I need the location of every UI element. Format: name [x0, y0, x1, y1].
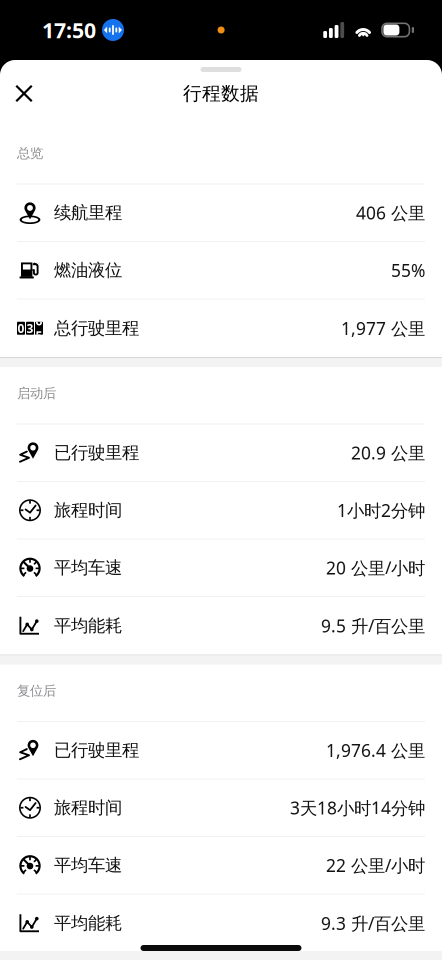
button[interactable]: 0	[0, 299, 442, 357]
staticText: 行程数据	[183, 82, 259, 105]
staticText: 复位后	[17, 683, 56, 699]
staticText: 总行驶里程	[54, 318, 139, 339]
button[interactable]: 已行驶里程	[0, 722, 442, 779]
staticText: 总览	[17, 145, 43, 161]
staticText: 续航里程	[54, 202, 122, 223]
staticText: 20.9 公里	[351, 441, 425, 464]
staticText: 9.5 升/百公里	[321, 614, 425, 637]
staticText: 6	[35, 313, 42, 329]
staticText: 平均车速	[54, 557, 122, 578]
staticText: 3	[26, 320, 33, 336]
staticText: 旅程时间	[54, 797, 122, 818]
staticText: 55%	[391, 259, 425, 282]
button[interactable]: 旅程时间	[0, 779, 442, 837]
staticText: 1,976.4 公里	[326, 739, 425, 762]
staticText: 17:50	[42, 16, 96, 44]
staticText: 已行驶里程	[54, 740, 139, 761]
staticText: 1小时2分钟	[337, 499, 425, 522]
staticText: 燃油液位	[54, 260, 122, 281]
button[interactable]: 平均车速	[0, 539, 442, 597]
button[interactable]: 平均能耗	[0, 597, 442, 654]
button[interactable]: 旅程时间	[0, 482, 442, 539]
button[interactable]: 平均车速	[0, 837, 442, 894]
staticText: 旅程时间	[54, 500, 122, 521]
button[interactable]: 平均能耗	[0, 894, 442, 952]
button[interactable]: Close	[3, 72, 45, 114]
staticText: 已行驶里程	[54, 442, 139, 463]
staticText: 1,977 公里	[341, 317, 425, 340]
staticText: 0	[17, 320, 24, 336]
staticText: 平均能耗	[54, 913, 122, 934]
staticText: 平均能耗	[54, 615, 122, 636]
staticText: 22 公里/小时	[326, 854, 425, 877]
button[interactable]: 燃油液位	[0, 242, 442, 299]
staticText: 20 公里/小时	[326, 556, 425, 579]
staticText: 9.3 升/百公里	[321, 912, 425, 935]
staticText: 3天18小时14分钟	[290, 796, 425, 819]
button[interactable]: 已行驶里程	[0, 424, 442, 482]
button[interactable]: 续航里程	[0, 184, 442, 242]
staticText: 平均车速	[54, 855, 122, 876]
staticText: 5	[35, 328, 42, 344]
staticText: 启动后	[17, 385, 56, 401]
staticText: 406 公里	[356, 201, 425, 224]
